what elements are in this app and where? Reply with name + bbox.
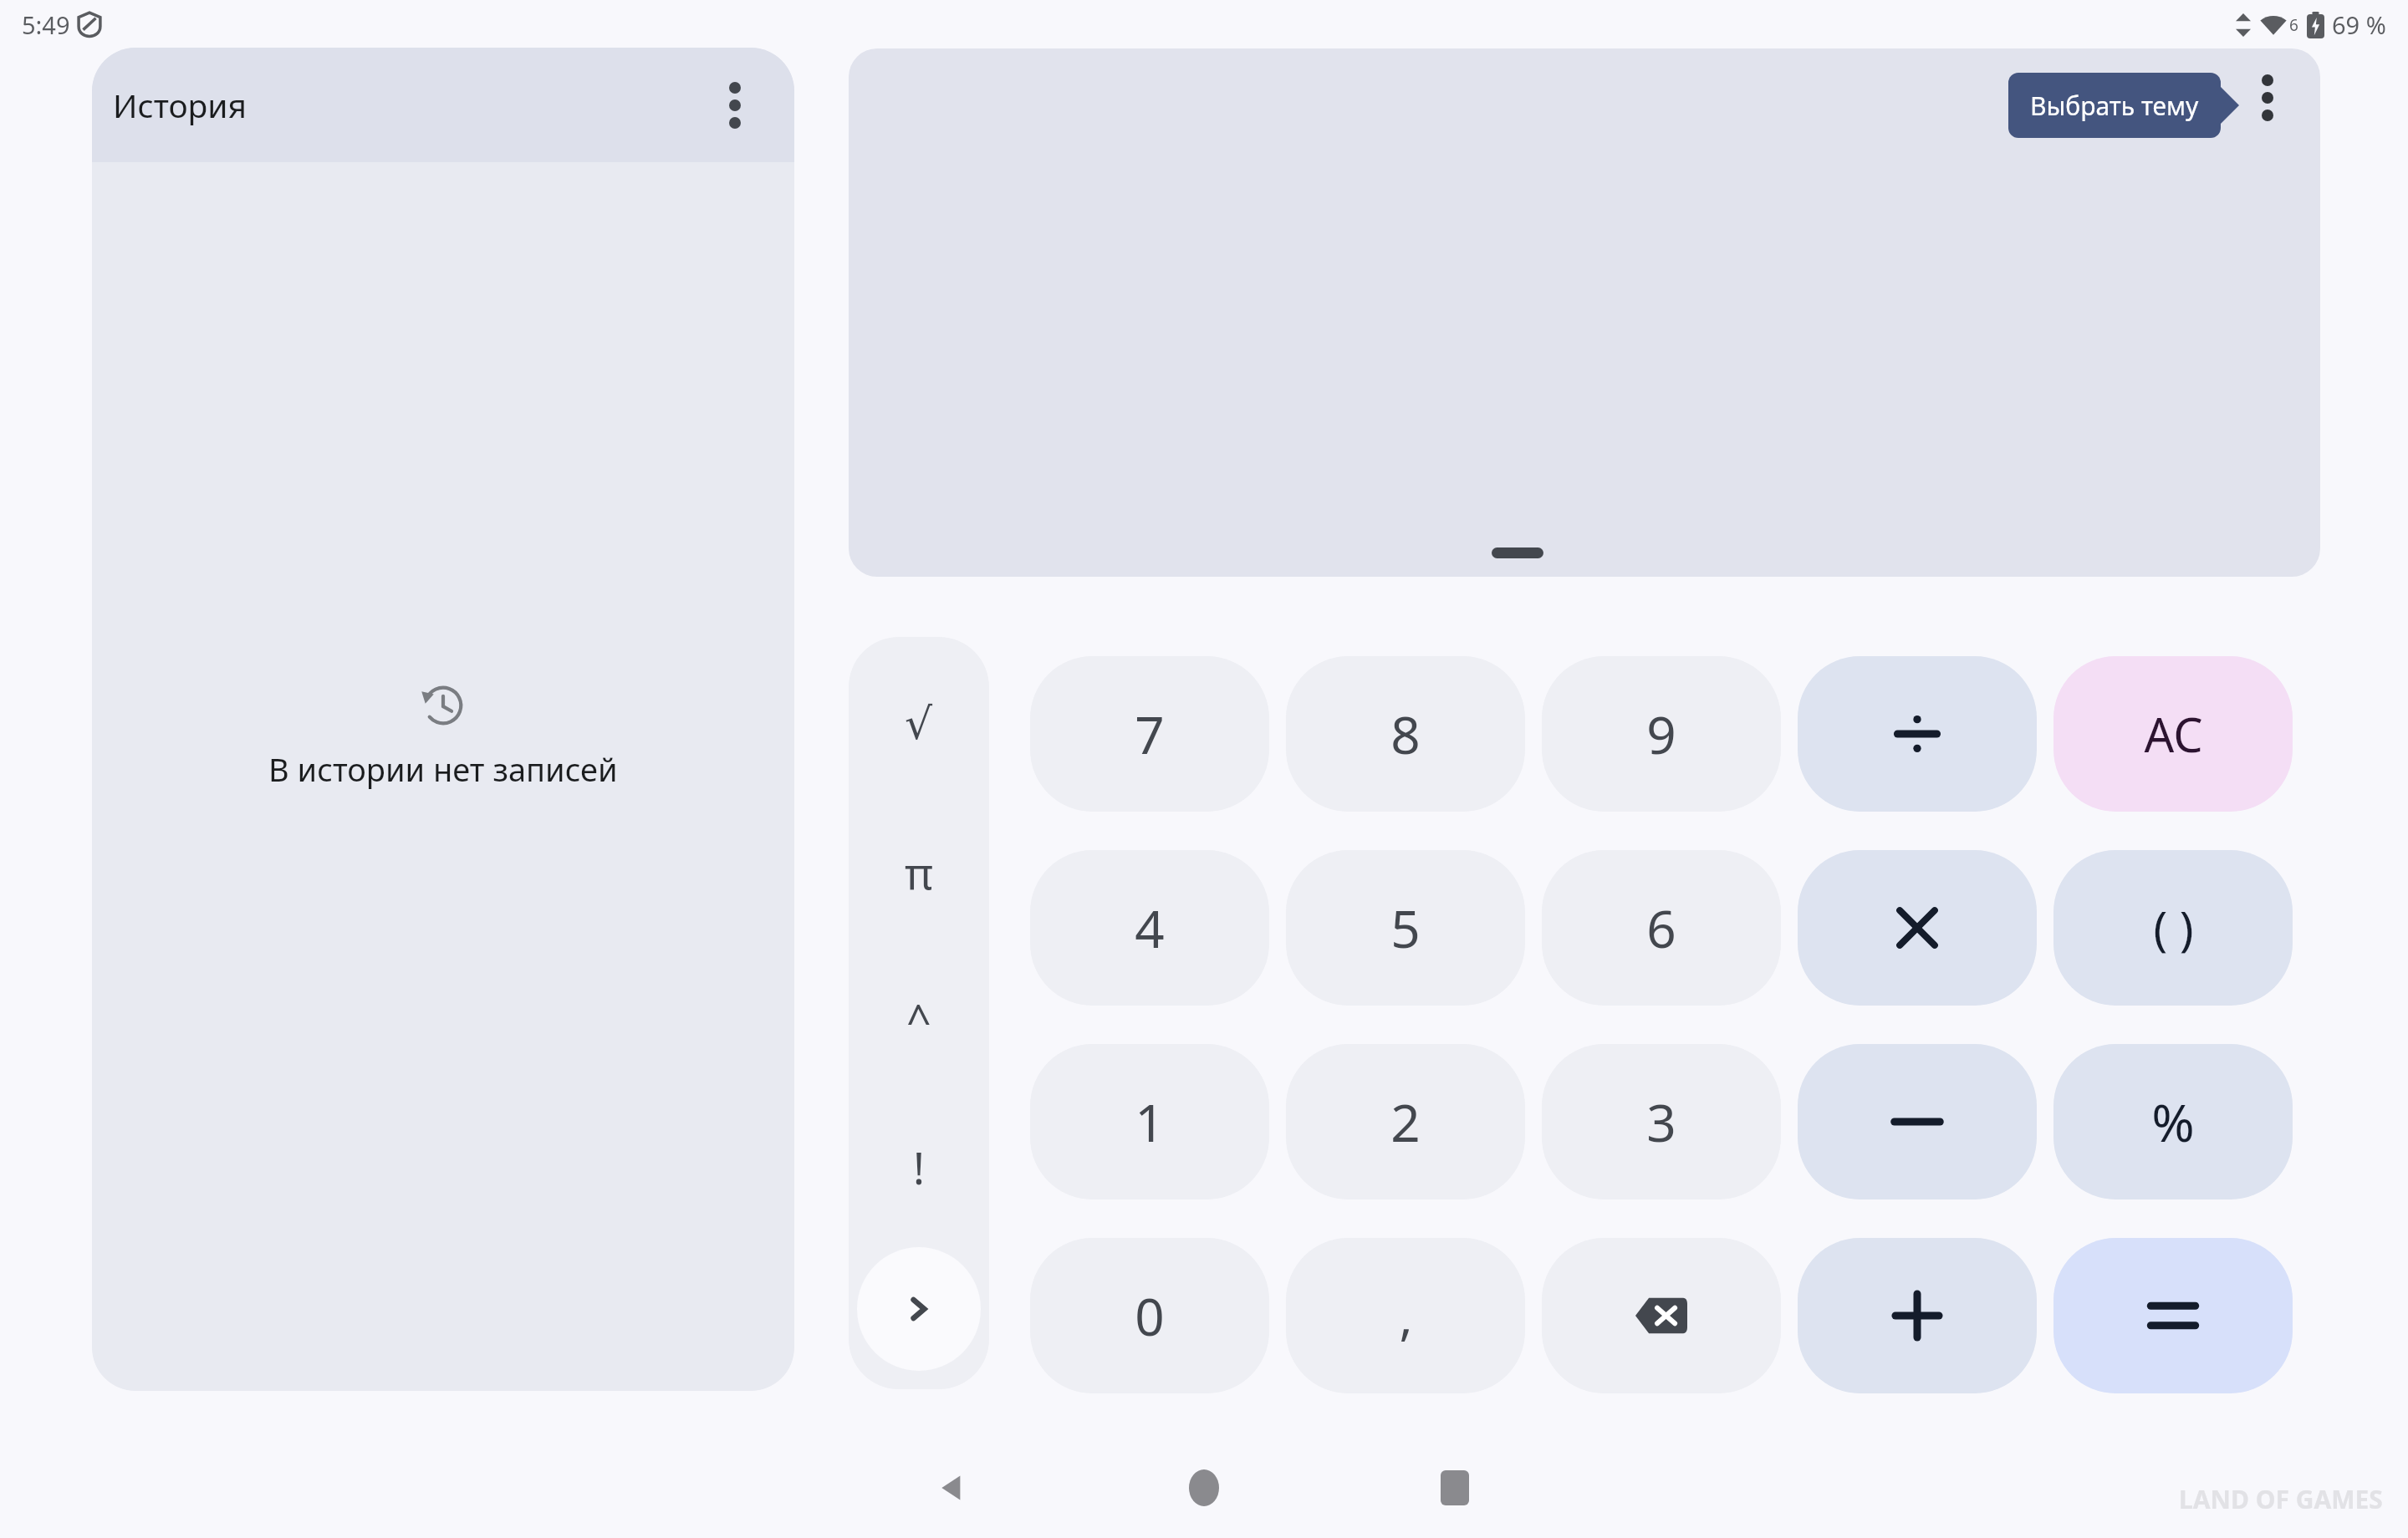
staticText: π (905, 843, 933, 902)
button[interactable]: 7 (1030, 656, 1269, 812)
staticText: 5:49 (22, 8, 70, 41)
staticText: 7 (1135, 699, 1165, 769)
staticText: √ (905, 699, 933, 750)
staticText: 5 (1390, 893, 1421, 963)
button[interactable]: , (1286, 1238, 1525, 1393)
staticText: ! (913, 1138, 925, 1197)
button[interactable]: More options (697, 68, 773, 143)
staticText: 8 (1390, 699, 1421, 769)
button[interactable]: 1 (1030, 1044, 1269, 1199)
staticText: AC (2144, 702, 2203, 766)
staticText: 3 (1646, 1087, 1676, 1157)
button[interactable]: More options (2228, 59, 2307, 137)
button[interactable] (1798, 1238, 2037, 1393)
button[interactable]: ^ (849, 952, 989, 1086)
staticText: LAND OF GAMES (2179, 1482, 2383, 1516)
button[interactable] (2053, 1238, 2293, 1393)
button[interactable]: История (92, 48, 794, 162)
button[interactable]: Backspace (1542, 1238, 1781, 1393)
button[interactable] (1798, 656, 2037, 812)
button[interactable]: Home (1141, 1438, 1267, 1538)
staticText: Выбрать тему (2030, 89, 2199, 123)
button[interactable]: 4 (1030, 850, 1269, 1006)
button[interactable]: π (849, 805, 989, 939)
button[interactable]: % (2053, 1044, 2293, 1199)
staticText: История (113, 83, 247, 127)
button[interactable]: Recent apps (1392, 1438, 1518, 1538)
staticText: В истории нет записей (268, 747, 618, 791)
button[interactable]: √ (849, 657, 989, 791)
staticText: 4 (1135, 893, 1165, 963)
button[interactable]: AC (2053, 656, 2293, 812)
staticText: ^ (906, 990, 931, 1049)
staticText: 0 (1135, 1281, 1165, 1351)
button[interactable]: ! (849, 1100, 989, 1234)
button[interactable]: 9 (1542, 656, 1781, 812)
staticText: 1 (1135, 1087, 1165, 1157)
button[interactable] (1798, 1044, 2037, 1199)
button[interactable]: 5 (1286, 850, 1525, 1006)
staticText: ( ) (2153, 896, 2194, 960)
button[interactable] (1798, 850, 2037, 1006)
button[interactable]: Back (890, 1438, 1016, 1538)
staticText: 69 % (2332, 8, 2386, 41)
button[interactable]: Выбрать тему (2008, 73, 2239, 138)
button[interactable]: 0 (1030, 1238, 1269, 1393)
button[interactable]: 3 (1542, 1044, 1781, 1199)
staticText: 9 (1646, 699, 1676, 769)
staticText: 6 (1646, 893, 1676, 963)
staticText: 6 (2289, 14, 2298, 36)
staticText: 2 (1390, 1087, 1421, 1157)
button[interactable]: 8 (1286, 656, 1525, 812)
button[interactable]: 2 (1286, 1044, 1525, 1199)
button[interactable]: 6 (1542, 850, 1781, 1006)
staticText: % (2151, 1087, 2195, 1157)
button[interactable]: ( ) (2053, 850, 2293, 1006)
staticText: , (1399, 1281, 1413, 1350)
button[interactable]: More functions (857, 1247, 981, 1371)
